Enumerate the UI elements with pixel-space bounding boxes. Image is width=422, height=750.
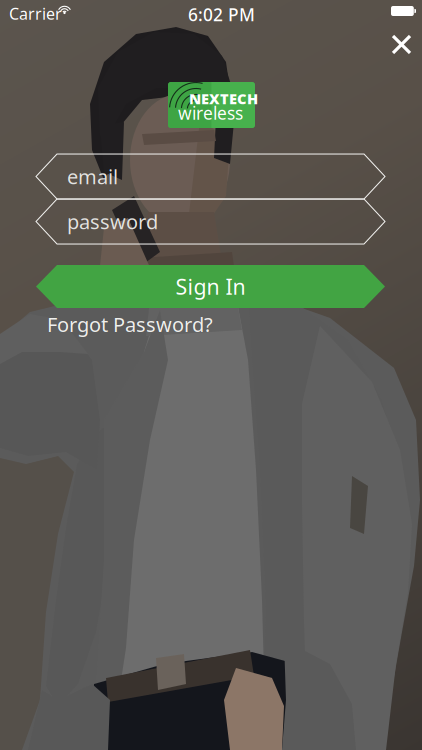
staticText: NEXTECH (189, 89, 258, 108)
button[interactable]: email (36, 154, 385, 199)
staticText: Sign In (175, 272, 245, 301)
staticText: email (67, 163, 118, 190)
staticText: 6:02 PM (188, 3, 255, 26)
staticText: password (67, 208, 158, 235)
staticText: Carrier (9, 3, 62, 24)
button[interactable]: password (36, 199, 385, 244)
staticText: Forgot Password? (47, 311, 213, 338)
button[interactable]: Sign In (36, 265, 385, 308)
staticText: wireless (178, 101, 243, 124)
button[interactable]: Forgot Password? (47, 308, 213, 341)
button[interactable]: Close (381, 24, 422, 65)
